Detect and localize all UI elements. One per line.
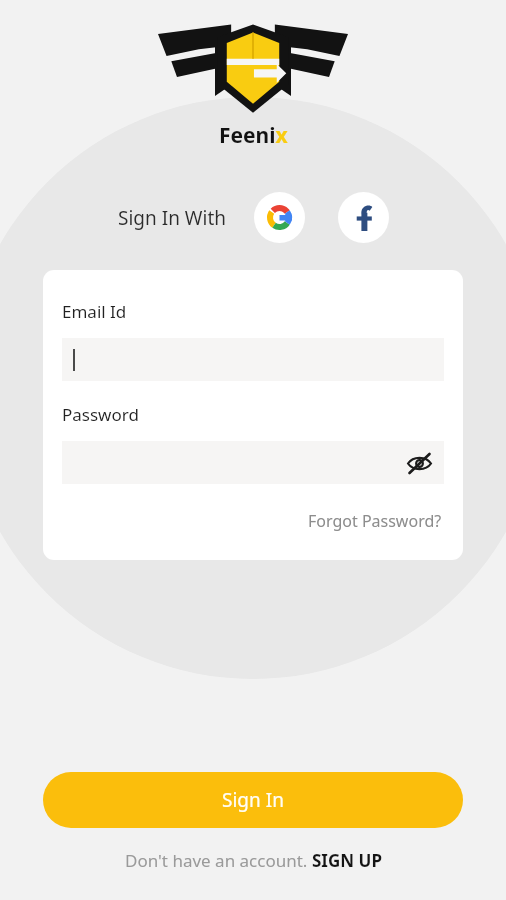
staticText: Sign In With <box>118 205 226 231</box>
button[interactable]: Sign in with Facebook <box>338 192 389 243</box>
button[interactable]: Sign In <box>43 772 463 828</box>
button[interactable]: Show password <box>402 446 436 480</box>
staticText: Email Id <box>62 300 127 323</box>
staticText: Feenix <box>219 121 288 150</box>
staticText: SIGN UP <box>312 849 382 872</box>
staticText: Don't have an account. <box>125 849 312 872</box>
button[interactable]: Sign in with Google <box>254 192 305 243</box>
staticText: Password <box>62 403 139 426</box>
button[interactable] <box>62 338 444 381</box>
button[interactable]: Don't have an account. <box>119 847 388 874</box>
staticText: Sign In <box>222 787 284 813</box>
button[interactable]: Show password <box>62 441 444 484</box>
button[interactable]: Forgot Password? <box>306 508 444 534</box>
